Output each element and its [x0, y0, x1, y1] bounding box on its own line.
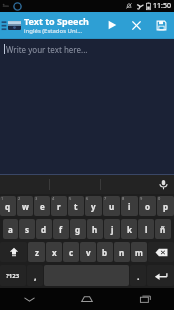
button[interactable]: f [53, 219, 69, 239]
staticText: t [74, 201, 78, 212]
staticText: Text to Speech [24, 15, 89, 27]
button[interactable]: Enter [147, 265, 174, 286]
staticText: inglés (Estados Uni… [24, 27, 82, 35]
button[interactable]: g [70, 219, 86, 239]
button[interactable]: Text to Speech [24, 15, 100, 35]
button[interactable]: z [28, 242, 45, 262]
button[interactable]: m [131, 242, 147, 262]
button[interactable]: Backspace [148, 242, 174, 262]
button[interactable]: 1 [0, 196, 16, 216]
button[interactable]: n [114, 242, 130, 262]
button[interactable]: Save [148, 12, 174, 38]
staticText: b [102, 247, 108, 258]
button[interactable]: Clear text [124, 12, 148, 38]
staticText: ñ [160, 224, 166, 235]
button[interactable]: 5 [68, 196, 84, 216]
staticText: a [8, 224, 13, 235]
staticText: i [128, 201, 131, 212]
staticText: 0 [158, 196, 161, 201]
button[interactable]: Write your text here... [0, 39, 174, 174]
button[interactable]: x [46, 242, 62, 262]
button[interactable]: 9 [139, 196, 156, 216]
staticText: x [52, 247, 57, 258]
staticText: o [145, 201, 150, 212]
staticText: l [145, 224, 148, 235]
button[interactable]: k [121, 219, 137, 239]
button[interactable]: a [3, 219, 18, 239]
button[interactable]: h [87, 219, 103, 239]
button[interactable]: j [104, 219, 120, 239]
button[interactable]: c [63, 242, 79, 262]
staticText: 1 [1, 196, 4, 201]
staticText: w [22, 201, 29, 212]
button[interactable]: Shift [0, 242, 27, 262]
button[interactable]: Back [0, 288, 58, 310]
button[interactable]: 0 [157, 196, 174, 216]
button[interactable]: v [80, 242, 96, 262]
staticText: f [59, 224, 63, 235]
staticText: 5 [69, 196, 72, 201]
staticText: d [41, 224, 47, 235]
staticText: 6 [86, 196, 89, 201]
staticText: Write your text here... [6, 44, 88, 55]
button[interactable]: , [27, 265, 43, 286]
button[interactable]: Recent apps [116, 288, 174, 310]
staticText: s [25, 224, 30, 235]
staticText: 11:50 [153, 1, 171, 11]
staticText: c [69, 247, 74, 258]
button[interactable]: 4 [51, 196, 67, 216]
staticText: e [40, 201, 45, 212]
staticText: k [127, 224, 132, 235]
button[interactable]: 7 [103, 196, 120, 216]
staticText: 4 [52, 196, 55, 201]
staticText: g [75, 224, 81, 235]
button[interactable]: ñ [155, 219, 171, 239]
staticText: v [86, 247, 91, 258]
button[interactable]: 6 [85, 196, 102, 216]
staticText: . [137, 270, 140, 282]
staticText: 3 [35, 196, 38, 201]
button[interactable]: s [19, 219, 35, 239]
button[interactable]: d [36, 219, 52, 239]
button[interactable]: Navigate up [0, 12, 21, 38]
staticText: ?123 [6, 272, 20, 280]
staticText: y [91, 201, 96, 212]
button[interactable]: l [138, 219, 154, 239]
staticText: r [57, 201, 61, 212]
button[interactable]: ?123 [0, 265, 26, 286]
button[interactable]: b [97, 242, 113, 262]
staticText: q [5, 201, 11, 212]
button[interactable]: 8 [121, 196, 138, 216]
button[interactable]: 3 [34, 196, 50, 216]
staticText: u [109, 201, 115, 212]
staticText: p [163, 201, 169, 212]
other: Navigate up [1, 19, 7, 32]
staticText: 9 [140, 196, 143, 201]
staticText: 7 [104, 196, 107, 201]
staticText: 2 [18, 196, 21, 201]
staticText: 8 [122, 196, 125, 201]
staticText: m [135, 247, 143, 258]
staticText: h [92, 224, 98, 235]
button[interactable]: Play [100, 12, 124, 38]
button[interactable]: . [130, 265, 146, 286]
button[interactable]: 2 [17, 196, 33, 216]
staticText: j [111, 224, 114, 235]
button[interactable]: Home [58, 288, 116, 310]
button[interactable]: Voice input [152, 175, 174, 194]
staticText: n [119, 247, 125, 258]
staticText: z [35, 247, 39, 258]
staticText: , [34, 270, 37, 282]
